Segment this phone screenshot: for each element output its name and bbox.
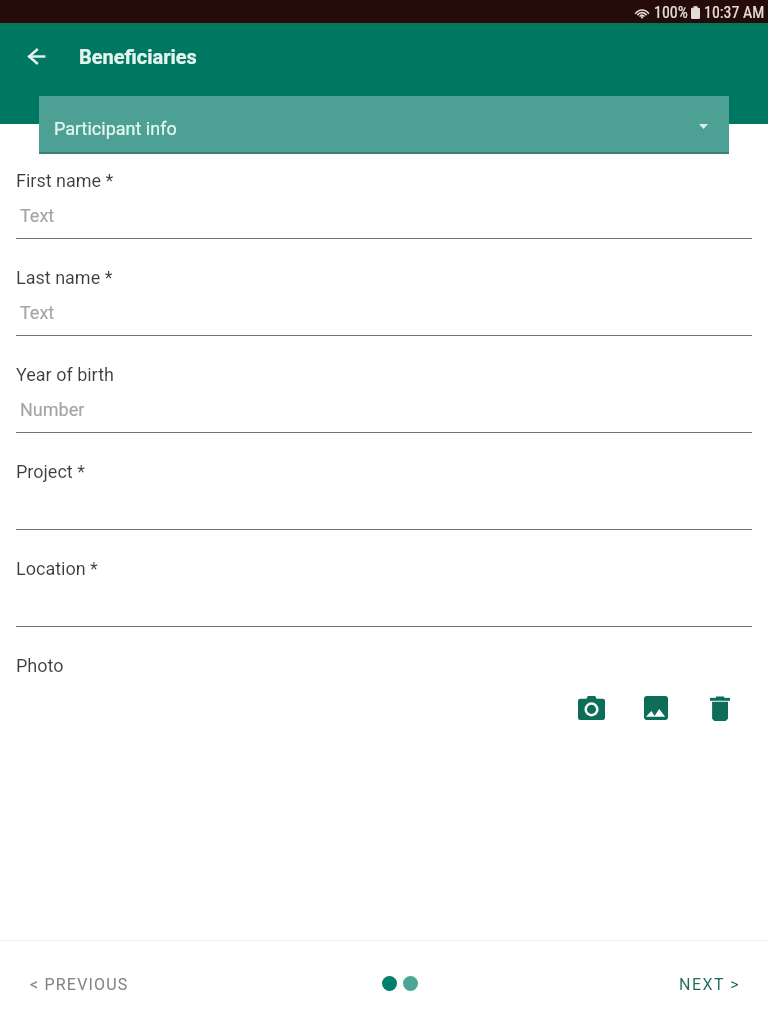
button[interactable]: Year of birth bbox=[16, 336, 752, 433]
staticText: 100% bbox=[654, 3, 688, 22]
button[interactable]: Delete photo bbox=[696, 684, 744, 732]
button[interactable]: NEXT > bbox=[665, 963, 755, 1006]
staticText: Text bbox=[20, 205, 55, 226]
staticText: Text bbox=[20, 302, 55, 323]
button[interactable]: Navigate back bbox=[8, 28, 64, 84]
staticText: Photo bbox=[16, 655, 64, 676]
button[interactable]: Location * bbox=[16, 530, 752, 627]
staticText: < PREVIOUS bbox=[30, 975, 129, 994]
button[interactable]: Last name * bbox=[16, 239, 752, 336]
staticText: 10:37 AM bbox=[704, 3, 765, 22]
button[interactable]: Take photo with camera bbox=[567, 684, 615, 732]
staticText: Last name * bbox=[16, 267, 113, 288]
staticText: Year of birth bbox=[16, 364, 114, 385]
staticText: Beneficiaries bbox=[79, 45, 197, 68]
staticText: Project * bbox=[16, 461, 85, 482]
staticText: Participant info bbox=[54, 118, 177, 139]
button[interactable]: Choose image from gallery bbox=[632, 684, 680, 732]
button[interactable]: < PREVIOUS bbox=[16, 963, 143, 1006]
staticText: NEXT > bbox=[679, 975, 741, 994]
button[interactable]: First name * bbox=[16, 142, 752, 239]
button[interactable]: Project * bbox=[16, 433, 752, 530]
staticText: First name * bbox=[16, 170, 114, 191]
staticText: Location * bbox=[16, 558, 98, 579]
button[interactable]: Participant info bbox=[39, 96, 729, 154]
staticText: Number bbox=[20, 399, 85, 420]
